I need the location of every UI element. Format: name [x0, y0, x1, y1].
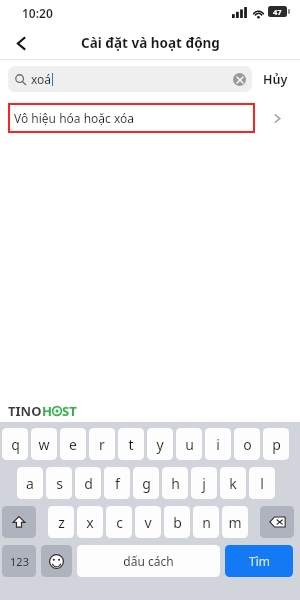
- staticText: xoá: [31, 71, 52, 87]
- button[interactable]: s: [46, 467, 72, 499]
- button[interactable]: c: [106, 506, 132, 538]
- button[interactable]: o: [234, 428, 260, 460]
- staticText: H: [42, 402, 52, 420]
- button[interactable]: m: [222, 506, 248, 538]
- button[interactable]: Shift: [2, 506, 36, 538]
- staticText: Cài đặt và hoạt động: [81, 34, 220, 52]
- button[interactable]: i: [205, 428, 231, 460]
- button[interactable]: b: [164, 506, 190, 538]
- button[interactable]: f: [104, 467, 130, 499]
- staticText: g: [142, 474, 151, 493]
- button[interactable]: p: [263, 428, 289, 460]
- staticText: q: [11, 435, 20, 454]
- staticText: 10:20: [22, 5, 53, 21]
- staticText: c: [116, 513, 123, 532]
- staticText: x: [86, 513, 94, 532]
- staticText: n: [202, 513, 211, 532]
- staticText: o: [243, 435, 252, 454]
- staticText: m: [228, 513, 242, 532]
- button[interactable]: dấu cách: [77, 545, 220, 577]
- staticText: h: [171, 474, 180, 493]
- staticText: w: [38, 435, 50, 454]
- staticText: f: [115, 474, 120, 493]
- staticText: r: [99, 435, 105, 454]
- button[interactable]: u: [176, 428, 202, 460]
- button[interactable]: Hủy: [252, 67, 292, 92]
- staticText: 47: [273, 7, 282, 17]
- button[interactable]: Emoji: [41, 545, 72, 577]
- staticText: t: [128, 435, 134, 454]
- button[interactable]: y: [147, 428, 173, 460]
- button[interactable]: j: [191, 467, 217, 499]
- button[interactable]: Tìm: [225, 545, 293, 577]
- button[interactable]: t: [118, 428, 144, 460]
- button[interactable]: q: [2, 428, 28, 460]
- button[interactable]: x: [77, 506, 103, 538]
- button[interactable]: k: [220, 467, 246, 499]
- staticText: a: [26, 474, 34, 493]
- button[interactable]: d: [75, 467, 101, 499]
- staticText: Hủy: [263, 71, 288, 88]
- button[interactable]: e: [60, 428, 86, 460]
- button[interactable]: xoá: [8, 66, 252, 92]
- button[interactable]: Backspace: [260, 506, 294, 538]
- staticText: z: [58, 513, 65, 532]
- staticText: j: [202, 474, 206, 493]
- staticText: d: [84, 474, 93, 493]
- staticText: y: [156, 435, 164, 454]
- staticText: v: [144, 513, 152, 532]
- staticText: ST: [62, 402, 77, 420]
- button[interactable]: n: [193, 506, 219, 538]
- button[interactable]: Open: [255, 103, 300, 133]
- staticText: i: [216, 435, 220, 454]
- button[interactable]: w: [31, 428, 57, 460]
- button[interactable]: Vô hiệu hóa hoặc xóa: [8, 103, 255, 133]
- button[interactable]: a: [17, 467, 43, 499]
- staticText: l: [260, 474, 264, 493]
- staticText: Vô hiệu hóa hoặc xóa: [14, 110, 135, 126]
- button[interactable]: 123: [2, 545, 36, 577]
- staticText: u: [185, 435, 194, 454]
- staticText: p: [272, 435, 281, 454]
- button[interactable]: Clear text: [233, 73, 246, 86]
- button[interactable]: l: [249, 467, 275, 499]
- staticText: 123: [10, 554, 29, 569]
- button[interactable]: v: [135, 506, 161, 538]
- staticText: k: [229, 474, 237, 493]
- button[interactable]: g: [133, 467, 159, 499]
- button[interactable]: Back: [6, 28, 36, 58]
- button[interactable]: r: [89, 428, 115, 460]
- button[interactable]: h: [162, 467, 188, 499]
- staticText: b: [173, 513, 182, 532]
- staticText: Tìm: [249, 553, 270, 569]
- staticText: e: [69, 435, 77, 454]
- button[interactable]: z: [48, 506, 74, 538]
- staticText: dấu cách: [123, 553, 174, 569]
- staticText: s: [56, 474, 63, 493]
- staticText: TINO: [8, 402, 42, 420]
